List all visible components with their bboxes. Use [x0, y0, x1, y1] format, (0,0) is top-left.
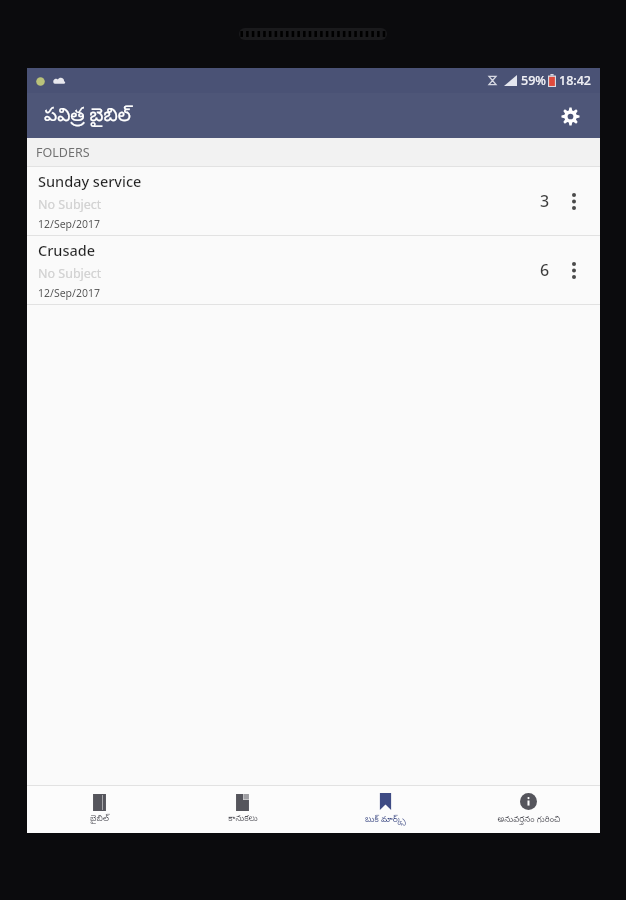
- staticText: 12/Sep/2017: [38, 286, 100, 300]
- staticText: బుక్ మార్క్స్: [365, 813, 406, 826]
- button[interactable]: More options: [556, 252, 592, 288]
- staticText: Sunday service: [38, 171, 142, 191]
- staticText: No Subject: [38, 265, 102, 282]
- button[interactable]: Sunday service: [27, 167, 600, 235]
- staticText: 6: [540, 259, 550, 281]
- button[interactable]: More options: [556, 183, 592, 219]
- staticText: 18:42: [559, 72, 592, 89]
- staticText: పవిత్ర బైబిల్: [44, 101, 131, 130]
- button[interactable]: కానుకలు: [171, 786, 314, 833]
- staticText: 12/Sep/2017: [38, 217, 100, 231]
- staticText: 3: [540, 190, 550, 212]
- staticText: కానుకలు: [228, 814, 258, 825]
- button[interactable]: Settings: [550, 96, 590, 136]
- button[interactable]: Crusade: [27, 236, 600, 304]
- staticText: FOLDERS: [36, 144, 90, 161]
- staticText: Crusade: [38, 240, 96, 260]
- staticText: అనువర్తనం గురించి: [497, 813, 561, 826]
- staticText: బైబిల్: [90, 814, 109, 825]
- button[interactable]: బుక్ మార్క్స్: [314, 786, 457, 833]
- staticText: No Subject: [38, 196, 102, 213]
- button[interactable]: అనువర్తనం గురించి: [457, 786, 600, 833]
- button[interactable]: బైబిల్: [27, 786, 171, 833]
- staticText: 59%: [521, 72, 546, 89]
